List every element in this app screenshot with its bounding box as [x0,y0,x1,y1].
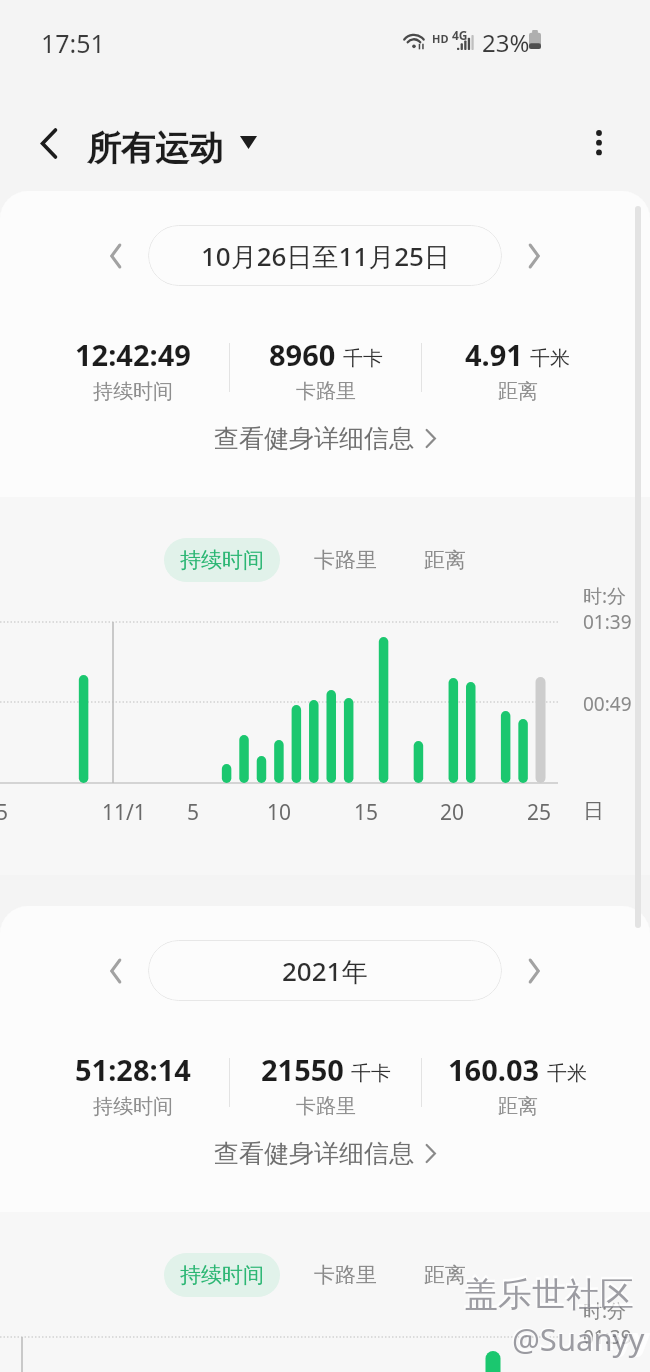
staticText: 卡路里 [314,547,377,573]
button[interactable]: Next period [512,949,556,993]
staticText: 卡路里 [296,1094,356,1119]
staticText: 时:分 [583,1298,627,1324]
staticText: 25 [527,798,552,827]
staticText: 查看健身详细信息 [214,423,414,454]
staticText: 8960 [269,335,336,374]
staticText: 4.91 [465,335,523,374]
staticText: 查看健身详细信息 [214,1138,414,1169]
staticText: 日 [583,798,604,824]
staticText: 10月26日至11月25日 [201,238,450,274]
staticText: 01:39 [583,1324,632,1350]
button[interactable]: 卡路里 [305,1253,385,1297]
staticText: 12:42:49 [75,335,191,374]
staticText: 160.03 [448,1050,540,1089]
button[interactable]: 持续时间 [164,538,280,582]
staticText: 千卡 [351,1061,391,1086]
staticText: 盖乐世社区 [463,1272,633,1315]
button[interactable]: 持续时间 [164,1253,280,1297]
staticText: 01:39 [583,609,632,635]
staticText: 距离 [424,1262,466,1288]
staticText: 所有运动 [87,127,223,170]
staticText: 持续时间 [180,1262,264,1288]
button[interactable]: 距离 [415,538,475,582]
staticText: 距离 [498,379,538,404]
button[interactable]: Next period [512,234,556,278]
button[interactable]: 10月26日至11月25日 [148,225,502,286]
staticText: 时:分 [583,583,627,609]
staticText: 17:51 [41,26,105,60]
staticText: 23% [482,26,530,59]
staticText: 15 [354,798,379,827]
staticText: 持续时间 [93,1094,173,1119]
staticText: 51:28:14 [75,1050,191,1089]
staticText: 5 [0,798,9,827]
staticText: 4G [452,27,468,43]
staticText: 盖乐世社区 [464,1273,634,1316]
staticText: 21550 [261,1050,344,1089]
button[interactable]: Previous period [94,949,138,993]
staticText: 00:49 [583,691,632,717]
staticText: 10 [267,798,292,827]
button[interactable]: 查看健身详细信息 [0,1136,650,1170]
staticText: 20 [440,798,465,827]
button[interactable]: 距离 [415,1253,475,1297]
staticText: HD [432,31,449,46]
button[interactable]: More options [574,118,624,168]
staticText: @Suanyy [511,1317,650,1359]
button[interactable]: 查看健身详细信息 [0,421,650,455]
button[interactable]: 卡路里 [305,538,385,582]
staticText: 卡路里 [296,379,356,404]
staticText: 5 [187,798,200,827]
staticText: @Suanyy [512,1318,645,1360]
staticText: 千米 [547,1061,587,1086]
staticText: 持续时间 [180,547,264,573]
staticText: 11/1 [102,798,146,827]
staticText: 千卡 [343,346,383,371]
button[interactable]: 2021年 [148,940,502,1001]
button[interactable]: Back [24,118,74,168]
button[interactable]: Previous period [94,234,138,278]
staticText: 持续时间 [93,379,173,404]
staticText: 2021年 [282,953,368,989]
staticText: 卡路里 [314,1262,377,1288]
staticText: 距离 [498,1094,538,1119]
staticText: 距离 [424,547,466,573]
staticText: 千米 [530,346,570,371]
